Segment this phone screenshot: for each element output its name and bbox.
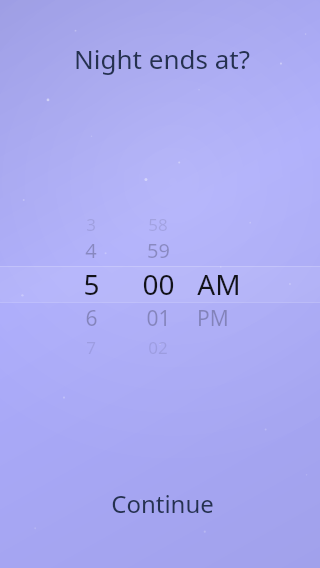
staticText: 59 bbox=[147, 237, 170, 264]
staticText: 02 bbox=[148, 336, 168, 359]
staticText: Night ends at? bbox=[74, 41, 250, 76]
staticText: 01 bbox=[146, 304, 171, 333]
staticText: AM bbox=[197, 265, 241, 303]
staticText: PM bbox=[197, 304, 229, 333]
staticText: 3 bbox=[86, 213, 96, 236]
staticText: 58 bbox=[148, 213, 168, 236]
staticText: 6 bbox=[85, 304, 98, 333]
button[interactable]: Night ends at? bbox=[62, 36, 262, 81]
button[interactable]: Continue bbox=[79, 478, 246, 529]
staticText: Continue bbox=[111, 487, 214, 520]
staticText: 00 bbox=[142, 265, 175, 303]
staticText: 5 bbox=[83, 265, 100, 303]
button[interactable]: Time picker, 5:00 AM bbox=[0, 266, 320, 302]
staticText: 7 bbox=[86, 336, 96, 359]
staticText: 4 bbox=[85, 237, 97, 264]
